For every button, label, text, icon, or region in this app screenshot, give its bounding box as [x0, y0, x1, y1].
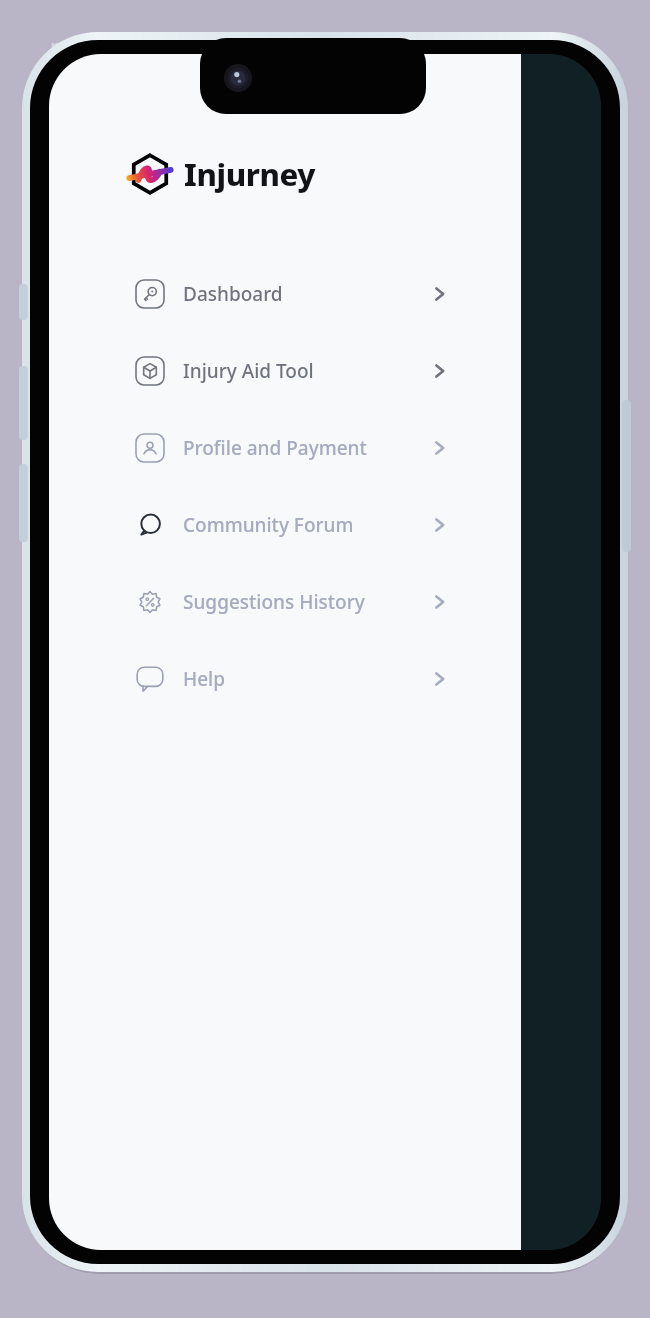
button[interactable]: Profile and Payment: [134, 422, 454, 474]
button[interactable]: Help: [134, 653, 454, 705]
other: Open Community Forum: [430, 515, 450, 535]
button[interactable]: Dashboard: [134, 268, 454, 320]
button[interactable]: Injurney: [124, 148, 318, 200]
staticText: Injurney: [184, 153, 316, 195]
staticText: Suggestions History: [183, 589, 430, 615]
button[interactable]: Injury Aid Tool: [134, 345, 454, 397]
button[interactable]: Suggestions History: [134, 576, 454, 628]
staticText: Profile and Payment: [183, 435, 430, 461]
other: Open Injury Aid Tool: [430, 361, 450, 381]
other: Open Profile and Payment: [430, 438, 450, 458]
staticText: Dashboard: [183, 281, 430, 307]
other: Open Suggestions History: [430, 592, 450, 612]
staticText: Community Forum: [183, 512, 430, 538]
staticText: pull out screen: [50, 31, 203, 61]
button[interactable]: Community Forum: [134, 499, 454, 551]
other: Open Dashboard: [430, 284, 450, 304]
staticText: Injury Aid Tool: [183, 358, 430, 384]
staticText: Help: [183, 666, 430, 692]
other: Open Help: [430, 669, 450, 689]
